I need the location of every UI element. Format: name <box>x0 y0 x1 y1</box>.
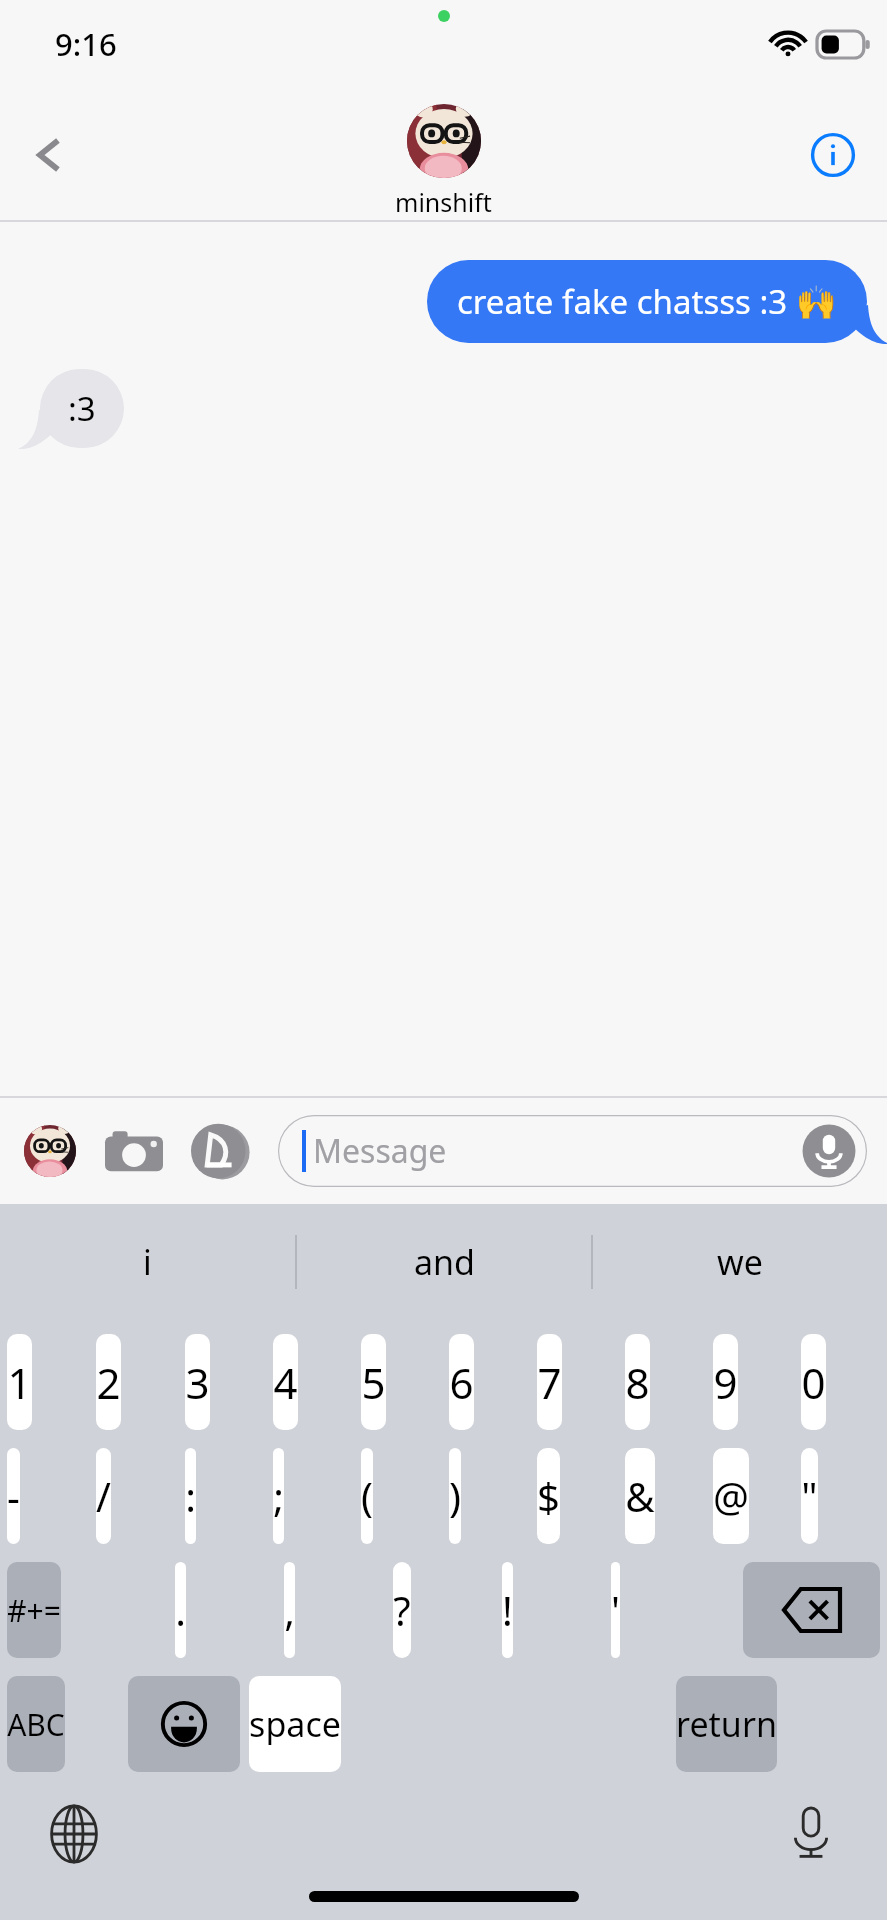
button[interactable]: Dictate <box>775 1798 847 1870</box>
staticText: @ <box>713 1469 749 1523</box>
button[interactable]: return <box>676 1676 777 1772</box>
staticText: ; <box>273 1469 284 1523</box>
staticText: 0 <box>801 1354 826 1411</box>
staticText: ) <box>449 1469 461 1523</box>
button[interactable]: #+= <box>7 1562 61 1658</box>
button[interactable]: : <box>185 1448 196 1544</box>
button[interactable]: Apps <box>188 1119 252 1183</box>
staticText: 7 <box>537 1354 562 1411</box>
staticText: Message <box>313 1129 447 1173</box>
staticText: 5 <box>361 1354 386 1411</box>
button[interactable]: ! <box>502 1562 513 1658</box>
button[interactable]: 0 <box>801 1334 826 1430</box>
button[interactable]: Delete <box>743 1562 880 1658</box>
button[interactable]: 4 <box>273 1334 298 1430</box>
staticText: & <box>625 1469 655 1523</box>
staticText: $ <box>537 1469 560 1523</box>
staticText: 2 <box>96 1354 121 1411</box>
staticText: 9 <box>713 1354 738 1411</box>
button[interactable]: Camera <box>102 1119 166 1183</box>
button[interactable]: ) <box>449 1448 461 1544</box>
staticText: and <box>414 1239 475 1285</box>
button[interactable]: Message <box>278 1115 867 1187</box>
button[interactable]: $ <box>537 1448 560 1544</box>
button[interactable]: 3 <box>185 1334 210 1430</box>
staticText: . <box>175 1583 186 1637</box>
button[interactable]: :3 <box>40 369 124 448</box>
button[interactable]: ' <box>611 1562 620 1658</box>
button[interactable]: & <box>625 1448 655 1544</box>
staticText: ( <box>361 1469 373 1523</box>
button[interactable]: 2 <box>96 1334 121 1430</box>
staticText: - <box>7 1469 20 1523</box>
button[interactable]: we <box>593 1204 887 1320</box>
button[interactable]: / <box>96 1448 111 1544</box>
staticText: , <box>284 1583 295 1637</box>
staticText: ' <box>611 1583 620 1637</box>
staticText: i <box>143 1239 152 1285</box>
button[interactable]: ? <box>393 1562 411 1658</box>
button[interactable]: ; <box>273 1448 284 1544</box>
button[interactable]: Change keyboard <box>38 1798 110 1870</box>
button[interactable]: Back <box>14 119 86 191</box>
button[interactable]: ABC <box>7 1676 65 1772</box>
staticText: return <box>676 1701 777 1747</box>
button[interactable]: Audio message <box>801 1123 857 1179</box>
button[interactable]: App Store <box>20 1121 80 1181</box>
staticText: 3 <box>185 1354 210 1411</box>
button[interactable]: , <box>284 1562 295 1658</box>
staticText: we <box>717 1239 763 1285</box>
button[interactable]: i <box>0 1204 295 1320</box>
button[interactable]: @ <box>713 1448 749 1544</box>
staticText: " <box>801 1469 818 1523</box>
staticText: create fake chatsss :3 🙌 <box>457 279 837 324</box>
button[interactable]: 6 <box>449 1334 474 1430</box>
staticText: / <box>96 1469 111 1523</box>
staticText: ! <box>502 1583 513 1637</box>
button[interactable]: 5 <box>361 1334 386 1430</box>
button[interactable]: 9 <box>713 1334 738 1430</box>
button[interactable]: 7 <box>537 1334 562 1430</box>
staticText: 4 <box>273 1354 298 1411</box>
button[interactable]: Details <box>797 119 869 191</box>
button[interactable]: 8 <box>625 1334 650 1430</box>
button[interactable]: . <box>175 1562 186 1658</box>
button[interactable]: 1 <box>7 1334 32 1430</box>
button[interactable]: - <box>7 1448 20 1544</box>
button[interactable]: and <box>297 1204 591 1320</box>
staticText: space <box>249 1701 341 1747</box>
button[interactable]: Emoji <box>128 1676 240 1772</box>
button[interactable]: " <box>801 1448 818 1544</box>
button[interactable]: create fake chatsss :3 🙌 <box>427 260 867 343</box>
staticText: minshift <box>395 185 492 219</box>
staticText: #+= <box>7 1590 61 1631</box>
button[interactable]: space <box>249 1676 341 1772</box>
button[interactable]: ( <box>361 1448 373 1544</box>
staticText: : <box>185 1469 196 1523</box>
staticText: ABC <box>7 1704 65 1745</box>
staticText: 8 <box>625 1354 650 1411</box>
staticText: 1 <box>7 1354 32 1411</box>
staticText: ? <box>393 1583 411 1637</box>
staticText: :3 <box>68 386 96 431</box>
staticText: 6 <box>449 1354 474 1411</box>
staticText: 9:16 <box>55 23 117 65</box>
button[interactable]: minshift <box>395 104 492 219</box>
